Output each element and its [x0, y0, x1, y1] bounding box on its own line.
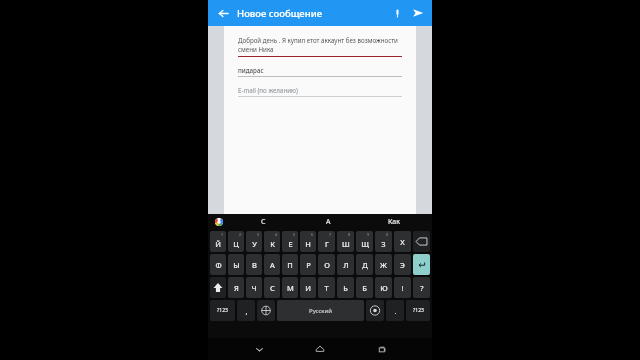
button[interactable]: Recents [371, 338, 393, 360]
staticText: Ц [233, 239, 239, 249]
staticText: Русский [309, 307, 332, 315]
staticText: Ш [342, 239, 350, 249]
button[interactable]: Как [361, 214, 426, 230]
button[interactable]: Л [337, 254, 354, 275]
staticText: пидарас [238, 66, 264, 74]
staticText: 4 [275, 232, 278, 237]
button[interactable]: Back [213, 3, 233, 23]
staticText: К [270, 239, 275, 249]
staticText: Доброй день . Я купил етот аккаунт без в… [238, 36, 402, 54]
button[interactable]: Backspace [413, 231, 430, 252]
staticText: А [270, 260, 275, 270]
staticText: ! [401, 283, 404, 293]
staticText: Ь [343, 283, 348, 293]
staticText: 8 [348, 232, 351, 237]
staticText: Т [324, 283, 329, 293]
staticText: E-mail (по желанию) [238, 86, 298, 94]
button[interactable]: Ю [375, 277, 392, 298]
staticText: Р [306, 260, 311, 270]
staticText: Как [388, 217, 400, 227]
staticText: С [270, 283, 275, 293]
button[interactable]: Ь [337, 277, 354, 298]
button[interactable]: Change language [257, 300, 275, 321]
button[interactable]: ? [413, 277, 430, 298]
staticText: З [381, 239, 386, 249]
button[interactable]: М [282, 277, 298, 298]
staticText: Д [362, 260, 368, 270]
button[interactable]: Я [228, 277, 244, 298]
button[interactable]: С [230, 214, 296, 230]
staticText: Ж [380, 260, 387, 270]
staticText: О [324, 260, 330, 270]
button[interactable]: Ч [246, 277, 262, 298]
button[interactable]: Shift [210, 277, 226, 298]
staticText: Я [234, 283, 239, 293]
button[interactable]: 2 [228, 231, 244, 252]
button[interactable]: А [296, 214, 361, 230]
staticText: Ч [251, 283, 257, 293]
staticText: ?123 [217, 307, 228, 314]
button[interactable]: ?123 [210, 300, 235, 321]
button[interactable]: Ж [375, 254, 392, 275]
button[interactable]: 7 [318, 231, 335, 252]
staticText: ? [420, 283, 424, 293]
button[interactable]: ! [394, 277, 411, 298]
staticText: 5 [293, 232, 296, 237]
button[interactable]: Т [318, 277, 335, 298]
button[interactable]: 9 [356, 231, 373, 252]
staticText: Л [343, 260, 349, 270]
staticText: А [326, 217, 331, 227]
staticText: , [245, 306, 248, 316]
button[interactable]: П [282, 254, 298, 275]
staticText: . [394, 306, 397, 316]
button[interactable]: Google [208, 214, 230, 230]
button[interactable]: Home [309, 338, 331, 360]
button[interactable]: Enter [413, 254, 430, 275]
staticText: М [287, 283, 294, 293]
button[interactable]: Э [394, 254, 411, 275]
button[interactable]: 8 [337, 231, 354, 252]
button[interactable]: Ы [228, 254, 244, 275]
button[interactable]: 5 [282, 231, 298, 252]
button[interactable]: И [300, 277, 316, 298]
button[interactable]: ?123 [406, 300, 430, 321]
staticText: Н [305, 239, 311, 249]
button[interactable]: О [318, 254, 335, 275]
staticText: 2 [239, 232, 242, 237]
staticText: И [305, 283, 311, 293]
staticText: П [287, 260, 293, 270]
button[interactable]: . [386, 300, 404, 321]
button[interactable]: Hide keyboard [248, 338, 270, 360]
staticText: Й [215, 239, 221, 249]
button[interactable]: Attach [388, 4, 406, 22]
button[interactable]: С [264, 277, 280, 298]
button[interactable]: Р [300, 254, 316, 275]
staticText: У [252, 239, 257, 249]
staticText: 9 [367, 232, 370, 237]
button[interactable]: 4 [264, 231, 280, 252]
button[interactable]: , [237, 300, 255, 321]
button[interactable]: Д [356, 254, 373, 275]
staticText: Б [362, 283, 367, 293]
staticText: 3 [257, 232, 260, 237]
button[interactable]: Send [408, 3, 428, 23]
button[interactable]: Русский [277, 300, 364, 321]
staticText: Ы [233, 260, 240, 270]
staticText: Щ [361, 239, 369, 249]
staticText: Э [400, 260, 405, 270]
button[interactable]: Б [356, 277, 373, 298]
staticText: В [252, 260, 257, 270]
button[interactable]: А [264, 254, 280, 275]
button[interactable]: Voice input [366, 300, 384, 321]
staticText: Е [288, 239, 293, 249]
button[interactable]: Х [394, 231, 411, 252]
button[interactable]: В [246, 254, 262, 275]
staticText: ?123 [413, 307, 424, 314]
button[interactable]: 1 [210, 231, 226, 252]
button[interactable]: 6 [300, 231, 316, 252]
button[interactable]: Ф [210, 254, 226, 275]
staticText: 7 [329, 232, 332, 237]
staticText: 6 [311, 232, 314, 237]
button[interactable]: 0 [375, 231, 392, 252]
button[interactable]: 3 [246, 231, 262, 252]
